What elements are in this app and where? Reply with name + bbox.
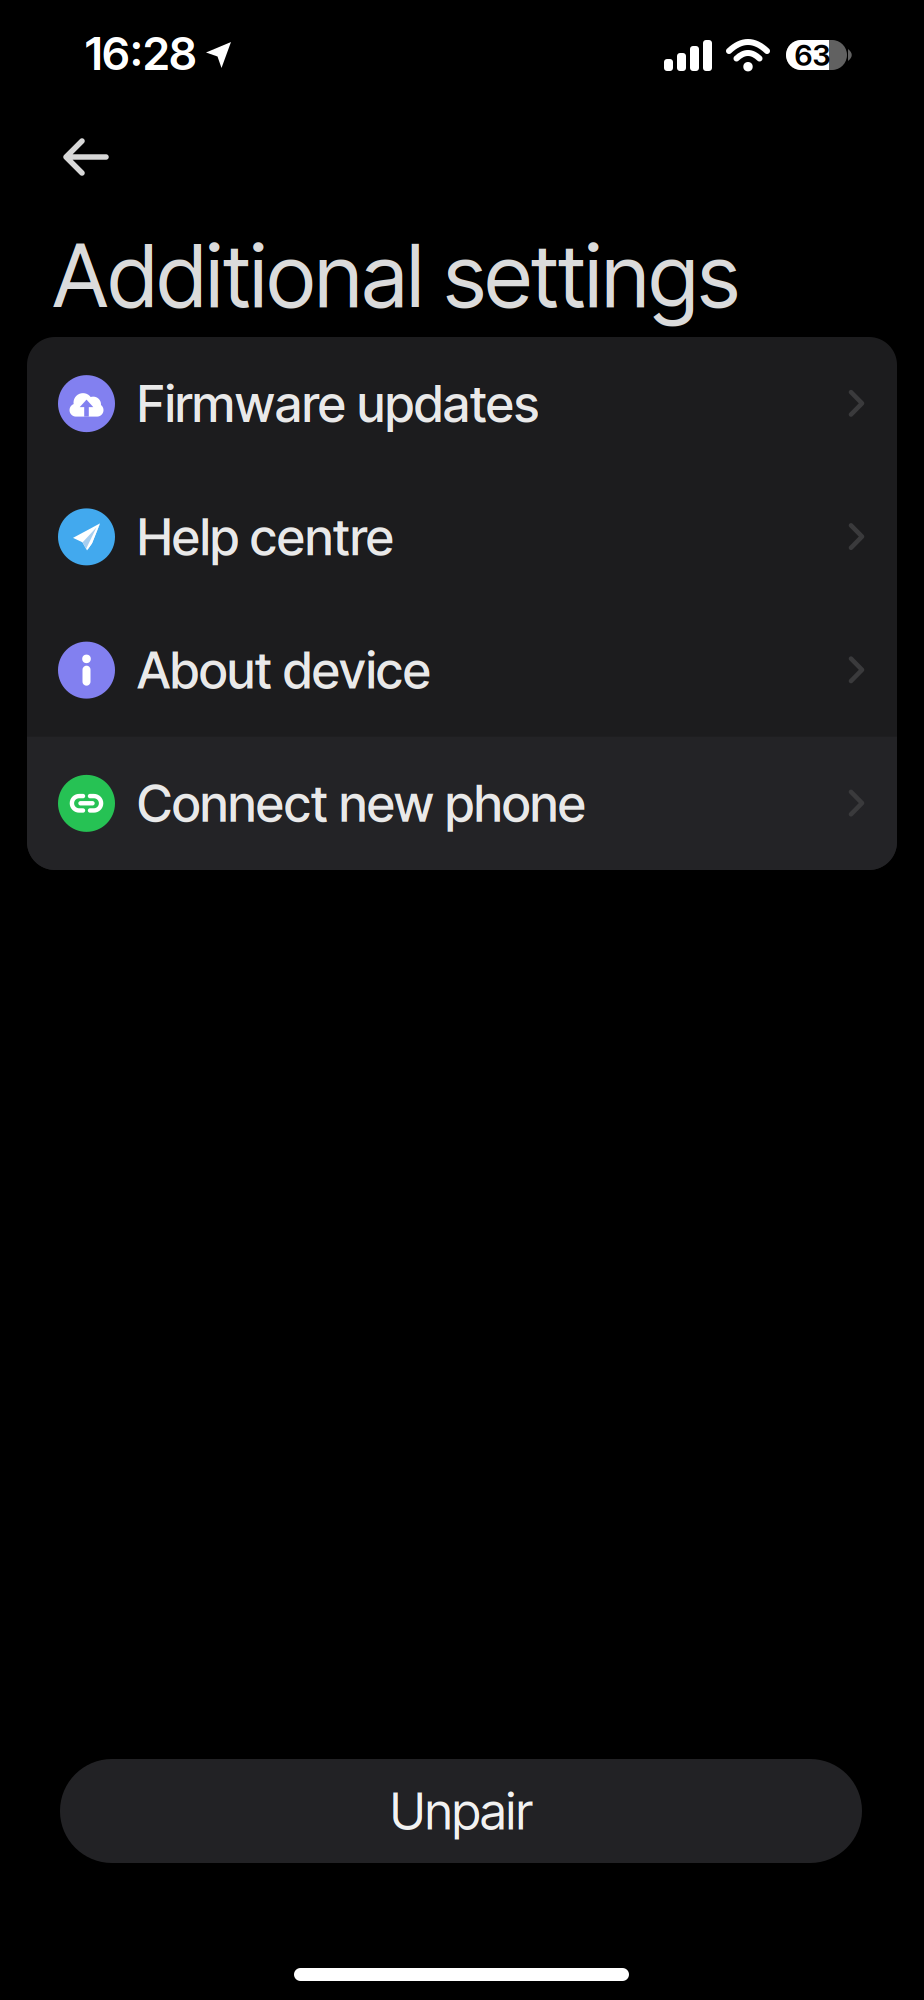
staticText: Unpair	[390, 1780, 532, 1842]
staticText: Help centre	[137, 506, 394, 567]
button[interactable]	[64, 140, 108, 174]
button[interactable]: Firmware updates	[27, 337, 897, 470]
staticText: Firmware updates	[137, 373, 539, 434]
staticText: Additional settings	[53, 223, 739, 328]
staticText: Connect new phone	[137, 773, 586, 834]
staticText: About device	[137, 639, 431, 701]
button[interactable]: Help centre	[27, 470, 897, 603]
button[interactable]: Unpair	[60, 1759, 862, 1863]
button[interactable]: Connect new phone	[27, 737, 897, 870]
staticText: 16:28	[85, 26, 197, 81]
button[interactable]: About device	[27, 603, 897, 737]
staticText: 63	[794, 37, 830, 73]
